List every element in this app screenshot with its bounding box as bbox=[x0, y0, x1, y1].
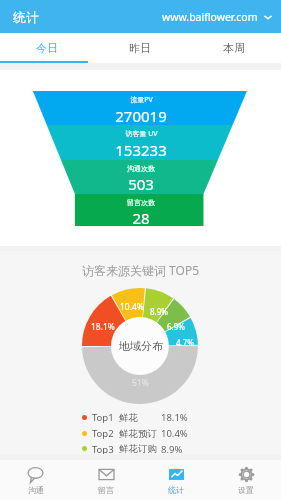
staticText: 今日 bbox=[36, 41, 58, 55]
staticText: 鲜花预订 bbox=[119, 428, 157, 440]
staticText: 昨日 bbox=[129, 41, 151, 55]
staticText: 18.1% bbox=[161, 411, 188, 424]
staticText: 鲜花订购 bbox=[119, 443, 157, 454]
staticText: Top1 bbox=[92, 411, 114, 424]
staticText: 地域分布 bbox=[119, 339, 163, 353]
staticText: 10.4% bbox=[120, 301, 144, 313]
staticText: 沟通 bbox=[28, 485, 44, 495]
staticText: 访客来源关键词 TOP5 bbox=[82, 262, 200, 278]
staticText: 沟通次数 bbox=[127, 164, 155, 173]
button[interactable]: 留言 bbox=[71, 460, 141, 500]
staticText: 8.9% bbox=[150, 306, 168, 317]
staticText: 270019 bbox=[115, 106, 167, 126]
staticText: 18.1% bbox=[91, 321, 115, 333]
staticText: 503 bbox=[128, 174, 154, 194]
other: Expand site selector bbox=[263, 12, 273, 22]
staticText: 统计 bbox=[168, 485, 184, 495]
staticText: 统计 bbox=[13, 9, 39, 25]
button[interactable]: 今日 bbox=[0, 33, 93, 63]
button[interactable]: 统计 bbox=[141, 460, 211, 500]
staticText: 鲜花 bbox=[119, 412, 138, 424]
staticText: 153233 bbox=[115, 140, 167, 160]
staticText: 流量PV bbox=[130, 95, 153, 105]
staticText: 8.9% bbox=[161, 443, 183, 454]
staticText: www.baiflower.com bbox=[162, 10, 258, 24]
staticText: Top2 bbox=[92, 427, 114, 440]
staticText: 51% bbox=[132, 377, 149, 389]
button[interactable]: 沟通 bbox=[0, 460, 71, 500]
staticText: 28 bbox=[132, 208, 150, 228]
staticText: 访客量 UV bbox=[125, 129, 158, 139]
staticText: 本周 bbox=[223, 41, 245, 55]
button[interactable]: www.baiflower.com bbox=[162, 10, 281, 24]
button[interactable]: 本周 bbox=[187, 33, 281, 63]
staticText: 4.7% bbox=[176, 337, 194, 348]
button[interactable]: 昨日 bbox=[93, 33, 187, 63]
staticText: 10.4% bbox=[161, 427, 188, 440]
staticText: 留言次数 bbox=[127, 198, 155, 207]
staticText: 设置 bbox=[238, 485, 254, 495]
staticText: 6.9% bbox=[167, 321, 185, 332]
button[interactable]: 设置 bbox=[211, 460, 281, 500]
staticText: 留言 bbox=[98, 485, 114, 495]
staticText: Top3 bbox=[92, 443, 114, 454]
